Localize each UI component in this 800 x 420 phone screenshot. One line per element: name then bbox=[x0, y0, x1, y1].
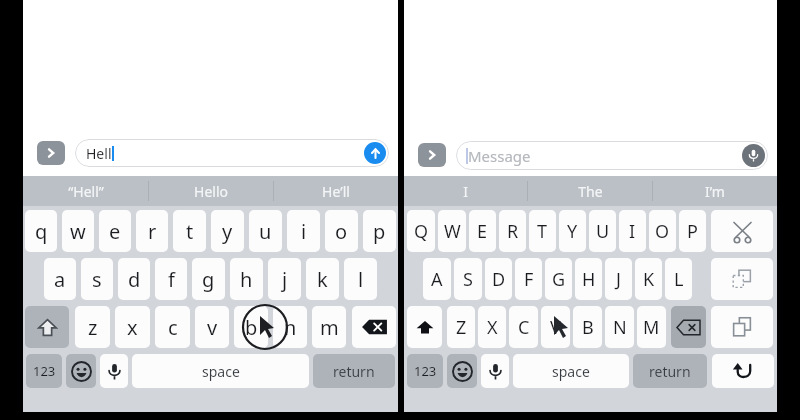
staticText: “Hell” bbox=[68, 182, 104, 201]
button[interactable]: X bbox=[478, 306, 506, 348]
button[interactable]: Y bbox=[559, 210, 586, 252]
button[interactable]: Copy bbox=[711, 306, 773, 348]
staticText: space bbox=[202, 362, 240, 381]
button[interactable]: Emoji bbox=[447, 354, 477, 388]
button[interactable]: a bbox=[44, 258, 76, 300]
button[interactable]: P bbox=[679, 210, 706, 252]
button[interactable]: A bbox=[423, 258, 451, 300]
button[interactable]: return bbox=[313, 354, 395, 388]
button[interactable]: V bbox=[541, 306, 570, 348]
button[interactable]: Hell bbox=[75, 139, 389, 167]
button[interactable]: p bbox=[363, 210, 396, 252]
button[interactable]: F bbox=[515, 258, 542, 300]
button[interactable]: E bbox=[469, 210, 496, 252]
button[interactable]: w bbox=[62, 210, 94, 252]
button[interactable]: Hello bbox=[149, 176, 273, 206]
button[interactable]: Shift bbox=[407, 306, 442, 348]
button[interactable]: Message bbox=[456, 141, 768, 170]
button[interactable]: t bbox=[173, 210, 206, 252]
staticText: f bbox=[168, 266, 175, 293]
button[interactable]: 123 bbox=[26, 354, 62, 388]
button[interactable]: s bbox=[81, 258, 113, 300]
button[interactable]: 123 bbox=[407, 354, 443, 388]
staticText: I’m bbox=[705, 182, 725, 201]
button[interactable]: d bbox=[118, 258, 150, 300]
button[interactable]: Dictate bbox=[481, 354, 509, 388]
staticText: J bbox=[616, 267, 621, 292]
button[interactable]: B bbox=[573, 306, 602, 348]
staticText: M bbox=[643, 315, 660, 340]
button[interactable]: u bbox=[249, 210, 282, 252]
staticText: o bbox=[335, 218, 348, 245]
button[interactable]: Q bbox=[407, 210, 435, 252]
button[interactable]: o bbox=[325, 210, 358, 252]
button[interactable]: g bbox=[192, 258, 225, 300]
button[interactable]: y bbox=[211, 210, 244, 252]
button[interactable]: G bbox=[545, 258, 572, 300]
button[interactable]: Backspace bbox=[352, 306, 396, 348]
button[interactable]: I bbox=[619, 210, 646, 252]
staticText: X bbox=[487, 315, 498, 340]
button[interactable]: e bbox=[99, 210, 131, 252]
button[interactable]: Undo bbox=[712, 354, 774, 388]
staticText: The bbox=[578, 182, 603, 201]
staticText: Y bbox=[567, 219, 578, 244]
button[interactable]: Emoji bbox=[66, 354, 96, 388]
button[interactable]: D bbox=[485, 258, 512, 300]
button[interactable]: i bbox=[287, 210, 320, 252]
button[interactable]: Dictate bbox=[742, 144, 765, 167]
staticText: S bbox=[463, 267, 473, 292]
button[interactable]: “Hell” bbox=[23, 176, 148, 206]
button[interactable]: H bbox=[575, 258, 602, 300]
staticText: m bbox=[320, 314, 339, 341]
button[interactable]: Shift bbox=[25, 306, 69, 348]
button[interactable]: Cut bbox=[711, 210, 773, 252]
button[interactable]: Z bbox=[447, 306, 475, 348]
button[interactable]: r bbox=[136, 210, 168, 252]
button[interactable]: M bbox=[637, 306, 666, 348]
button[interactable]: Send bbox=[364, 142, 386, 164]
staticText: 123 bbox=[33, 362, 56, 380]
button[interactable]: m bbox=[312, 306, 346, 348]
staticText: b bbox=[245, 314, 258, 341]
button[interactable]: h bbox=[230, 258, 263, 300]
button[interactable]: C bbox=[509, 306, 538, 348]
button[interactable]: App drawer bbox=[418, 143, 446, 167]
staticText: z bbox=[88, 314, 98, 341]
button[interactable]: O bbox=[649, 210, 676, 252]
button[interactable]: The bbox=[528, 176, 652, 206]
button[interactable]: I bbox=[404, 176, 527, 206]
staticText: e bbox=[109, 218, 121, 245]
staticText: j bbox=[282, 266, 288, 293]
button[interactable]: I’m bbox=[653, 176, 777, 206]
button[interactable]: z bbox=[75, 306, 110, 348]
button[interactable]: He’ll bbox=[274, 176, 398, 206]
button[interactable]: k bbox=[306, 258, 339, 300]
button[interactable]: W bbox=[438, 210, 466, 252]
button[interactable]: K bbox=[635, 258, 662, 300]
button[interactable]: return bbox=[633, 354, 707, 388]
button[interactable]: L bbox=[665, 258, 692, 300]
staticText: L bbox=[674, 267, 684, 292]
button[interactable]: l bbox=[344, 258, 377, 300]
button[interactable]: U bbox=[589, 210, 616, 252]
button[interactable]: Paste bbox=[711, 258, 773, 300]
button[interactable]: b bbox=[234, 306, 268, 348]
button[interactable]: j bbox=[268, 258, 301, 300]
button[interactable]: space bbox=[132, 354, 309, 388]
button[interactable]: N bbox=[605, 306, 634, 348]
button[interactable]: Backspace bbox=[671, 306, 706, 348]
button[interactable]: space bbox=[513, 354, 629, 388]
button[interactable]: S bbox=[454, 258, 482, 300]
button[interactable]: f bbox=[155, 258, 187, 300]
button[interactable]: v bbox=[195, 306, 229, 348]
button[interactable]: App drawer bbox=[37, 141, 65, 165]
button[interactable]: R bbox=[499, 210, 526, 252]
button[interactable]: c bbox=[155, 306, 190, 348]
button[interactable]: T bbox=[529, 210, 556, 252]
button[interactable]: Dictate bbox=[100, 354, 128, 388]
button[interactable]: n bbox=[273, 306, 307, 348]
button[interactable]: J bbox=[605, 258, 632, 300]
button[interactable]: q bbox=[25, 210, 57, 252]
button[interactable]: x bbox=[115, 306, 150, 348]
